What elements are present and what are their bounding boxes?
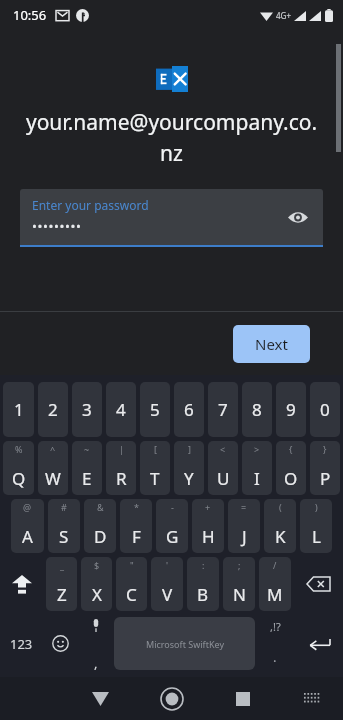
button[interactable]: @ bbox=[11, 499, 44, 553]
button[interactable]: Microsoft SwiftKey bbox=[114, 617, 255, 670]
button[interactable]: ) bbox=[300, 499, 332, 553]
button[interactable]: [ bbox=[140, 441, 170, 495]
button[interactable]: Enter your password bbox=[20, 189, 323, 245]
staticText: @ bbox=[23, 501, 32, 513]
staticText: T bbox=[150, 467, 160, 490]
button[interactable]: Voice input bbox=[78, 613, 114, 674]
staticText: N bbox=[233, 583, 246, 606]
staticText: [ bbox=[154, 443, 157, 455]
button[interactable]: & bbox=[84, 499, 116, 553]
staticText: I bbox=[254, 467, 260, 490]
staticText: Next bbox=[255, 334, 288, 354]
button[interactable]: Emoji bbox=[42, 613, 78, 674]
staticText: : bbox=[202, 559, 205, 571]
button[interactable]: ; bbox=[223, 557, 255, 611]
button[interactable]: - bbox=[156, 499, 188, 553]
button[interactable]: 4 bbox=[106, 382, 136, 437]
button[interactable]: $ bbox=[81, 557, 112, 611]
button[interactable]: Back bbox=[80, 679, 120, 719]
button[interactable]: > bbox=[242, 441, 272, 495]
button[interactable]: Recent apps bbox=[223, 679, 263, 719]
staticText: R bbox=[116, 467, 127, 490]
staticText: O bbox=[284, 467, 298, 490]
staticText: > bbox=[254, 443, 260, 455]
staticText: W bbox=[45, 467, 61, 490]
button[interactable]: < bbox=[208, 441, 238, 495]
button[interactable]: ,!? bbox=[255, 613, 295, 674]
button[interactable]: 3 bbox=[72, 382, 102, 437]
button[interactable]: + bbox=[192, 499, 224, 553]
button[interactable]: Show password bbox=[283, 202, 313, 232]
button[interactable]: Switch keyboard bbox=[295, 682, 329, 716]
staticText: 4G+ bbox=[276, 10, 291, 21]
staticText: = bbox=[241, 501, 247, 513]
staticText: Microsoft SwiftKey bbox=[146, 638, 224, 650]
button[interactable]: ( bbox=[264, 499, 296, 553]
staticText: & bbox=[97, 501, 104, 513]
button[interactable]: 1 bbox=[3, 382, 34, 437]
staticText: Enter your password bbox=[32, 197, 149, 213]
staticText: - bbox=[171, 501, 174, 513]
staticText: V bbox=[162, 583, 173, 606]
button[interactable]: 7 bbox=[208, 382, 238, 437]
button[interactable]: { bbox=[276, 441, 306, 495]
staticText: ,!? bbox=[270, 619, 281, 634]
button[interactable]: 0 bbox=[310, 382, 340, 437]
staticText: ~ bbox=[84, 443, 90, 455]
button[interactable]: Shift bbox=[0, 555, 44, 613]
staticText: A bbox=[22, 525, 33, 548]
staticText: Z bbox=[57, 583, 67, 606]
button[interactable]: } bbox=[310, 441, 340, 495]
button[interactable]: ] bbox=[174, 441, 204, 495]
staticText: K bbox=[275, 525, 286, 548]
staticText: 7 bbox=[218, 398, 228, 421]
button[interactable]: 8 bbox=[242, 382, 272, 437]
button[interactable]: 5 bbox=[140, 382, 170, 437]
staticText: H bbox=[202, 525, 215, 548]
staticText: · bbox=[273, 652, 277, 670]
button[interactable]: ' bbox=[151, 557, 183, 611]
button[interactable]: | bbox=[106, 441, 136, 495]
staticText: ) bbox=[315, 501, 318, 513]
staticText: Q bbox=[12, 467, 26, 490]
button[interactable]: _ bbox=[46, 557, 77, 611]
staticText: ] bbox=[188, 443, 191, 455]
staticText: 8 bbox=[252, 398, 262, 421]
button[interactable]: 6 bbox=[174, 382, 204, 437]
staticText: < bbox=[220, 443, 226, 455]
staticText: $ bbox=[94, 559, 100, 571]
button[interactable]: Home bbox=[152, 679, 192, 719]
staticText: L bbox=[312, 525, 321, 548]
button[interactable]: = bbox=[228, 499, 260, 553]
staticText: J bbox=[242, 525, 247, 548]
button[interactable]: Enter bbox=[295, 613, 343, 674]
staticText: 10:56 bbox=[13, 6, 47, 24]
staticText: D bbox=[94, 525, 107, 548]
button[interactable]: ^ bbox=[38, 441, 68, 495]
staticText: ••••••••• bbox=[32, 217, 82, 235]
button[interactable]: 9 bbox=[276, 382, 306, 437]
button[interactable]: 2 bbox=[38, 382, 68, 437]
staticText: 2 bbox=[48, 398, 58, 421]
staticText: F bbox=[132, 525, 141, 548]
button[interactable]: # bbox=[48, 499, 80, 553]
staticText: Y bbox=[184, 467, 194, 490]
staticText: 3 bbox=[82, 398, 92, 421]
staticText: " bbox=[130, 559, 134, 571]
staticText: 0 bbox=[320, 398, 330, 421]
staticText: U bbox=[217, 467, 230, 490]
button[interactable]: Next bbox=[233, 325, 310, 363]
button[interactable]: Backspace bbox=[293, 555, 343, 613]
button[interactable]: 123 bbox=[0, 613, 42, 674]
staticText: 4 bbox=[116, 398, 126, 421]
button[interactable]: % bbox=[3, 441, 34, 495]
button[interactable]: : bbox=[187, 557, 219, 611]
button[interactable]: / bbox=[259, 557, 291, 611]
button[interactable]: * bbox=[120, 499, 152, 553]
staticText: , bbox=[94, 654, 98, 672]
staticText: C bbox=[126, 583, 137, 606]
staticText: / bbox=[273, 559, 277, 571]
button[interactable]: ~ bbox=[72, 441, 102, 495]
staticText: _ bbox=[60, 559, 64, 571]
button[interactable]: " bbox=[116, 557, 147, 611]
